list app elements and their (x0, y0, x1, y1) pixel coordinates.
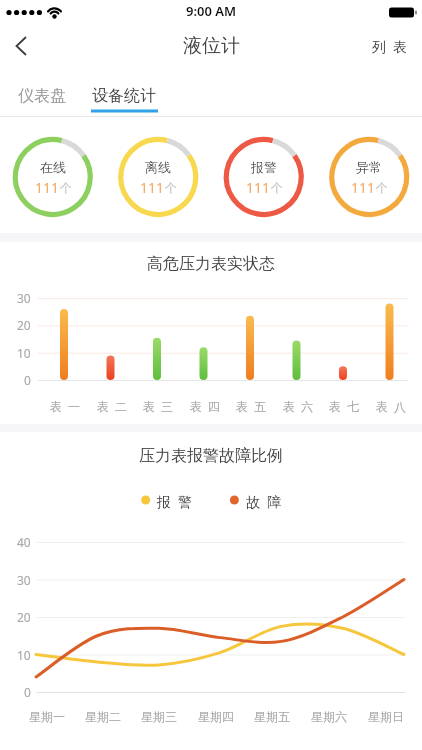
button[interactable]: 报 警 (144, 490, 204, 512)
staticText: 10 (17, 345, 31, 361)
staticText: 列 表 (372, 37, 407, 56)
staticText: 液位计 (183, 34, 240, 58)
staticText: 仪表盘 (18, 86, 66, 106)
button[interactable] (331, 139, 407, 215)
button[interactable] (120, 139, 196, 215)
staticText: 异常 (356, 159, 382, 175)
button[interactable] (226, 139, 302, 215)
staticText: 111 (246, 178, 271, 197)
staticText: 报 警 (157, 492, 192, 511)
staticText: 40 (17, 534, 31, 550)
staticText: 20 (17, 317, 31, 333)
staticText: 10 (17, 647, 31, 663)
button[interactable]: 设备统计 (84, 81, 164, 111)
staticText: 星期二 (85, 709, 121, 724)
staticText: 在线 (40, 159, 66, 175)
staticText: 星期三 (141, 709, 177, 724)
staticText: 0 (24, 372, 31, 388)
staticText: 压力表报警故障比例 (139, 446, 283, 466)
staticText: 20 (17, 609, 31, 625)
staticText: 设备统计 (92, 86, 156, 106)
button[interactable]: 仪表盘 (7, 81, 77, 111)
staticText: 30 (17, 290, 31, 306)
staticText: 111 (140, 178, 165, 197)
staticText: 星期日 (368, 709, 404, 724)
staticText: 个 (165, 180, 177, 195)
staticText: 111 (35, 178, 60, 197)
button[interactable]: 故 障 (233, 490, 293, 512)
staticText: 离线 (145, 159, 171, 175)
staticText: 星期四 (198, 709, 234, 724)
staticText: 0 (24, 684, 31, 700)
staticText: 111 (351, 178, 376, 197)
staticText: 9:00 AM (186, 2, 237, 20)
button[interactable]: 列 表 (359, 32, 419, 60)
staticText: 表 八 (376, 398, 407, 414)
staticText: 个 (271, 180, 283, 195)
button[interactable] (15, 139, 91, 215)
staticText: 个 (376, 180, 388, 195)
staticText: 星期五 (254, 709, 290, 724)
button[interactable] (8, 32, 36, 60)
staticText: 星期一 (29, 709, 65, 724)
staticText: 表 七 (329, 398, 360, 414)
staticText: 故 障 (246, 492, 281, 511)
staticText: 表 四 (190, 398, 221, 414)
staticText: 个 (60, 180, 72, 195)
staticText: 表 三 (143, 398, 174, 414)
staticText: 表 一 (50, 398, 81, 414)
staticText: 高危压力表实状态 (147, 254, 275, 274)
staticText: 30 (17, 572, 31, 588)
staticText: 表 二 (97, 398, 128, 414)
staticText: 表 五 (236, 398, 267, 414)
staticText: 星期六 (311, 709, 347, 724)
staticText: 报警 (251, 159, 277, 175)
staticText: 表 六 (283, 398, 314, 414)
